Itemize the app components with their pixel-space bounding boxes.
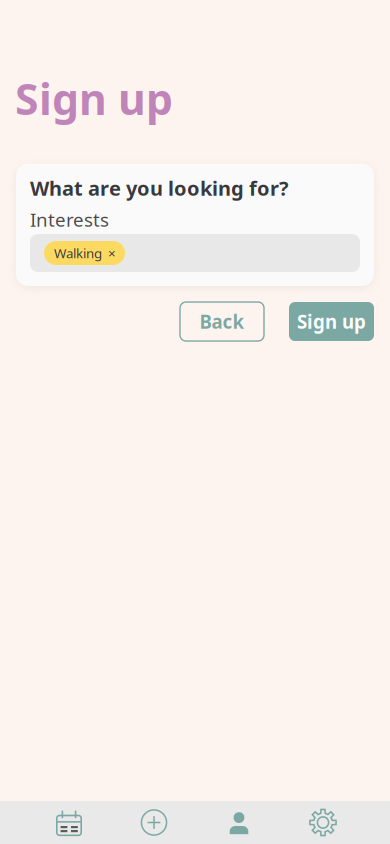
button[interactable]: Calendar xyxy=(55,808,83,836)
button[interactable]: Sign up xyxy=(289,302,374,341)
button[interactable]: Back xyxy=(180,302,264,341)
button[interactable]: Settings xyxy=(308,807,338,837)
staticText: Sign up xyxy=(15,70,173,127)
staticText: × xyxy=(108,244,116,262)
staticText: Walking xyxy=(54,244,102,262)
staticText: What are you looking for? xyxy=(30,175,289,201)
staticText: Back xyxy=(199,309,244,334)
staticText: Interests xyxy=(30,207,109,232)
button[interactable]: Profile xyxy=(225,808,253,836)
button[interactable]: Add xyxy=(140,808,168,836)
staticText: Sign up xyxy=(297,309,366,334)
